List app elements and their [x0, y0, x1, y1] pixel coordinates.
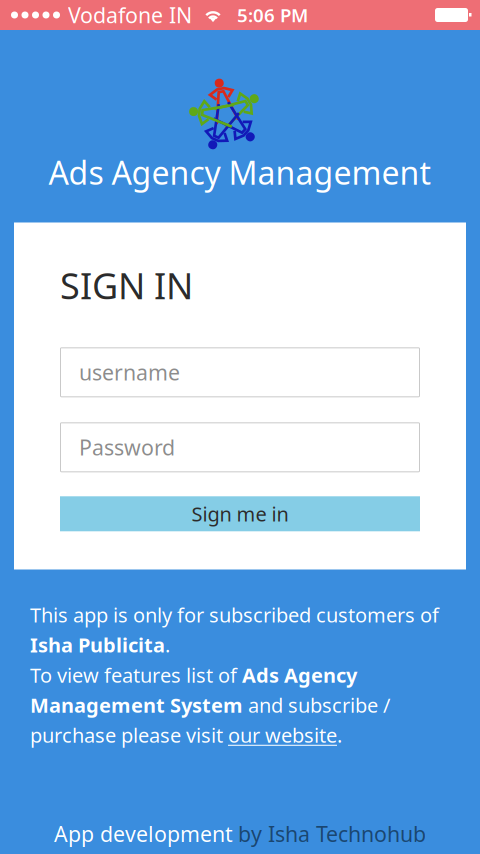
staticText: Sign me in: [191, 500, 288, 527]
staticText: This app is only for subscribed customer…: [30, 601, 439, 628]
staticText: 5:06 PM: [237, 3, 308, 27]
staticText: Management System and subscribe /: [30, 692, 390, 718]
staticText: purchase please visit: [30, 722, 228, 748]
button[interactable]: our website: [228, 722, 337, 748]
staticText: Isha Publicita.: [30, 632, 170, 658]
staticText: Ads Agency Management: [48, 151, 431, 193]
button[interactable]: username: [60, 347, 420, 397]
staticText: Password: [79, 433, 175, 461]
staticText: Vodafone IN: [68, 1, 192, 29]
staticText: To view features list of Ads Agency: [30, 662, 357, 688]
staticText: App development: [54, 820, 233, 848]
staticText: our website: [228, 722, 337, 748]
staticText: SIGN IN: [60, 261, 193, 309]
staticText: .: [337, 722, 342, 748]
staticText: by Isha Technohub: [238, 820, 426, 848]
button[interactable]: Sign me in: [60, 496, 420, 531]
staticText: username: [79, 358, 180, 386]
button[interactable]: Password: [60, 422, 420, 472]
